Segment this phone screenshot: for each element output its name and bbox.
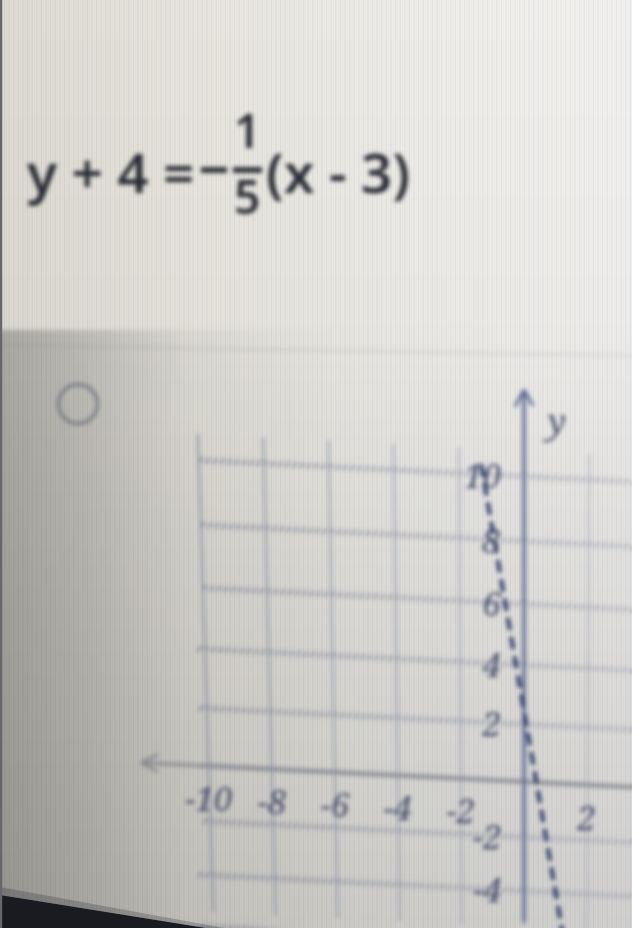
button[interactable]: Answer choice: graph of the line <box>0 0 632 928</box>
